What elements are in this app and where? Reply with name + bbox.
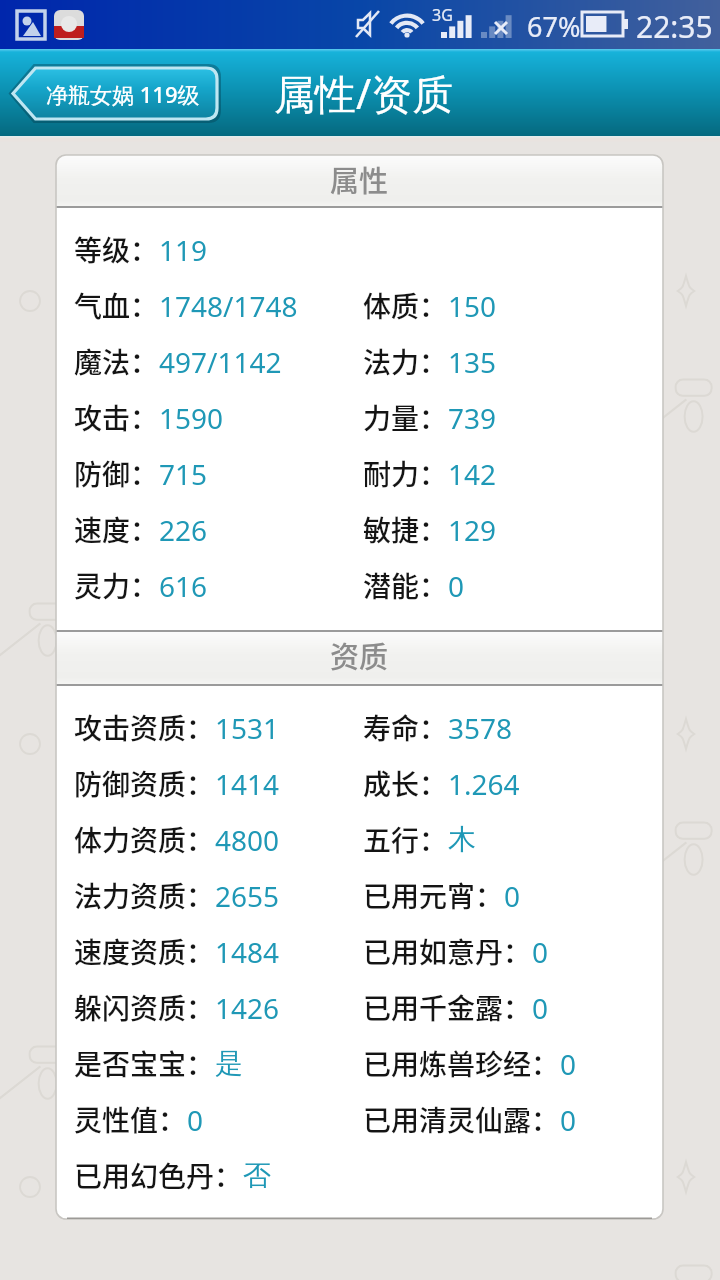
staticText: 耐力： [363,453,448,494]
staticText: 1.264 [448,765,520,803]
staticText: 否 [243,1158,271,1193]
staticText: 体力资质： [74,819,215,860]
staticText: 0 [448,567,465,605]
staticText: 3578 [448,709,513,747]
staticText: 潜能： [363,565,448,606]
staticText: 150 [448,287,497,325]
staticText: 142 [448,455,497,493]
staticText: 0 [532,989,549,1027]
staticText: 属性 [330,158,389,200]
staticText: 木 [448,822,476,857]
staticText: 防御资质： [74,763,215,804]
staticText: 1414 [215,765,280,803]
staticText: 3G [432,4,453,26]
staticText: 资质 [330,634,389,676]
staticText: 体质： [363,285,448,326]
staticText: 是否宝宝： [74,1043,215,1084]
staticText: 1426 [215,989,280,1027]
staticText: 防御： [74,453,159,494]
staticText: 灵性值： [74,1099,187,1140]
staticText: 1484 [215,933,280,971]
staticText: 力量： [363,397,448,438]
staticText: 魔法： [74,341,159,382]
staticText: 寿命： [363,707,448,748]
staticText: 0 [532,933,549,971]
staticText: 速度资质： [74,931,215,972]
staticText: 灵力： [74,565,159,606]
staticText: 4800 [215,821,280,859]
staticText: 497/1142 [159,343,282,381]
staticText: 1590 [159,399,224,437]
staticText: 已用幻色丹： [74,1155,243,1196]
staticText: 是 [215,1046,243,1081]
staticText: 已用元宵： [363,875,504,916]
button[interactable]: 返回 [10,65,220,122]
staticText: 法力： [363,341,448,382]
staticText: 已用炼兽珍经： [363,1043,560,1084]
staticText: 2655 [215,877,280,915]
staticText: 0 [560,1101,577,1139]
staticText: 敏捷： [363,509,448,550]
staticText: 成长： [363,763,448,804]
staticText: 22:35 [636,6,713,47]
staticText: 攻击资质： [74,707,215,748]
staticText: 已用千金露： [363,987,532,1028]
staticText: 法力资质： [74,875,215,916]
staticText: 67% [527,8,581,45]
staticText: 1748/1748 [159,287,298,325]
staticText: 0 [504,877,521,915]
staticText: 129 [448,511,497,549]
staticText: 135 [448,343,497,381]
staticText: 气血： [74,285,159,326]
staticText: 等级： [74,229,159,270]
staticText: 616 [159,567,208,605]
staticText: 0 [187,1101,204,1139]
staticText: 速度： [74,509,159,550]
staticText: 五行： [363,819,448,860]
staticText: 已用清灵仙露： [363,1099,560,1140]
staticText: 躲闪资质： [74,987,215,1028]
staticText: 715 [159,455,208,493]
staticText: 攻击： [74,397,159,438]
staticText: 已用如意丹： [363,931,532,972]
staticText: 0 [560,1045,577,1083]
staticText: 226 [159,511,208,549]
staticText: 739 [448,399,497,437]
staticText: 属性/资质 [274,65,454,121]
staticText: 1531 [215,709,280,747]
staticText: 119 [159,231,208,269]
staticText: 净瓶女娲 119级 [46,79,200,109]
